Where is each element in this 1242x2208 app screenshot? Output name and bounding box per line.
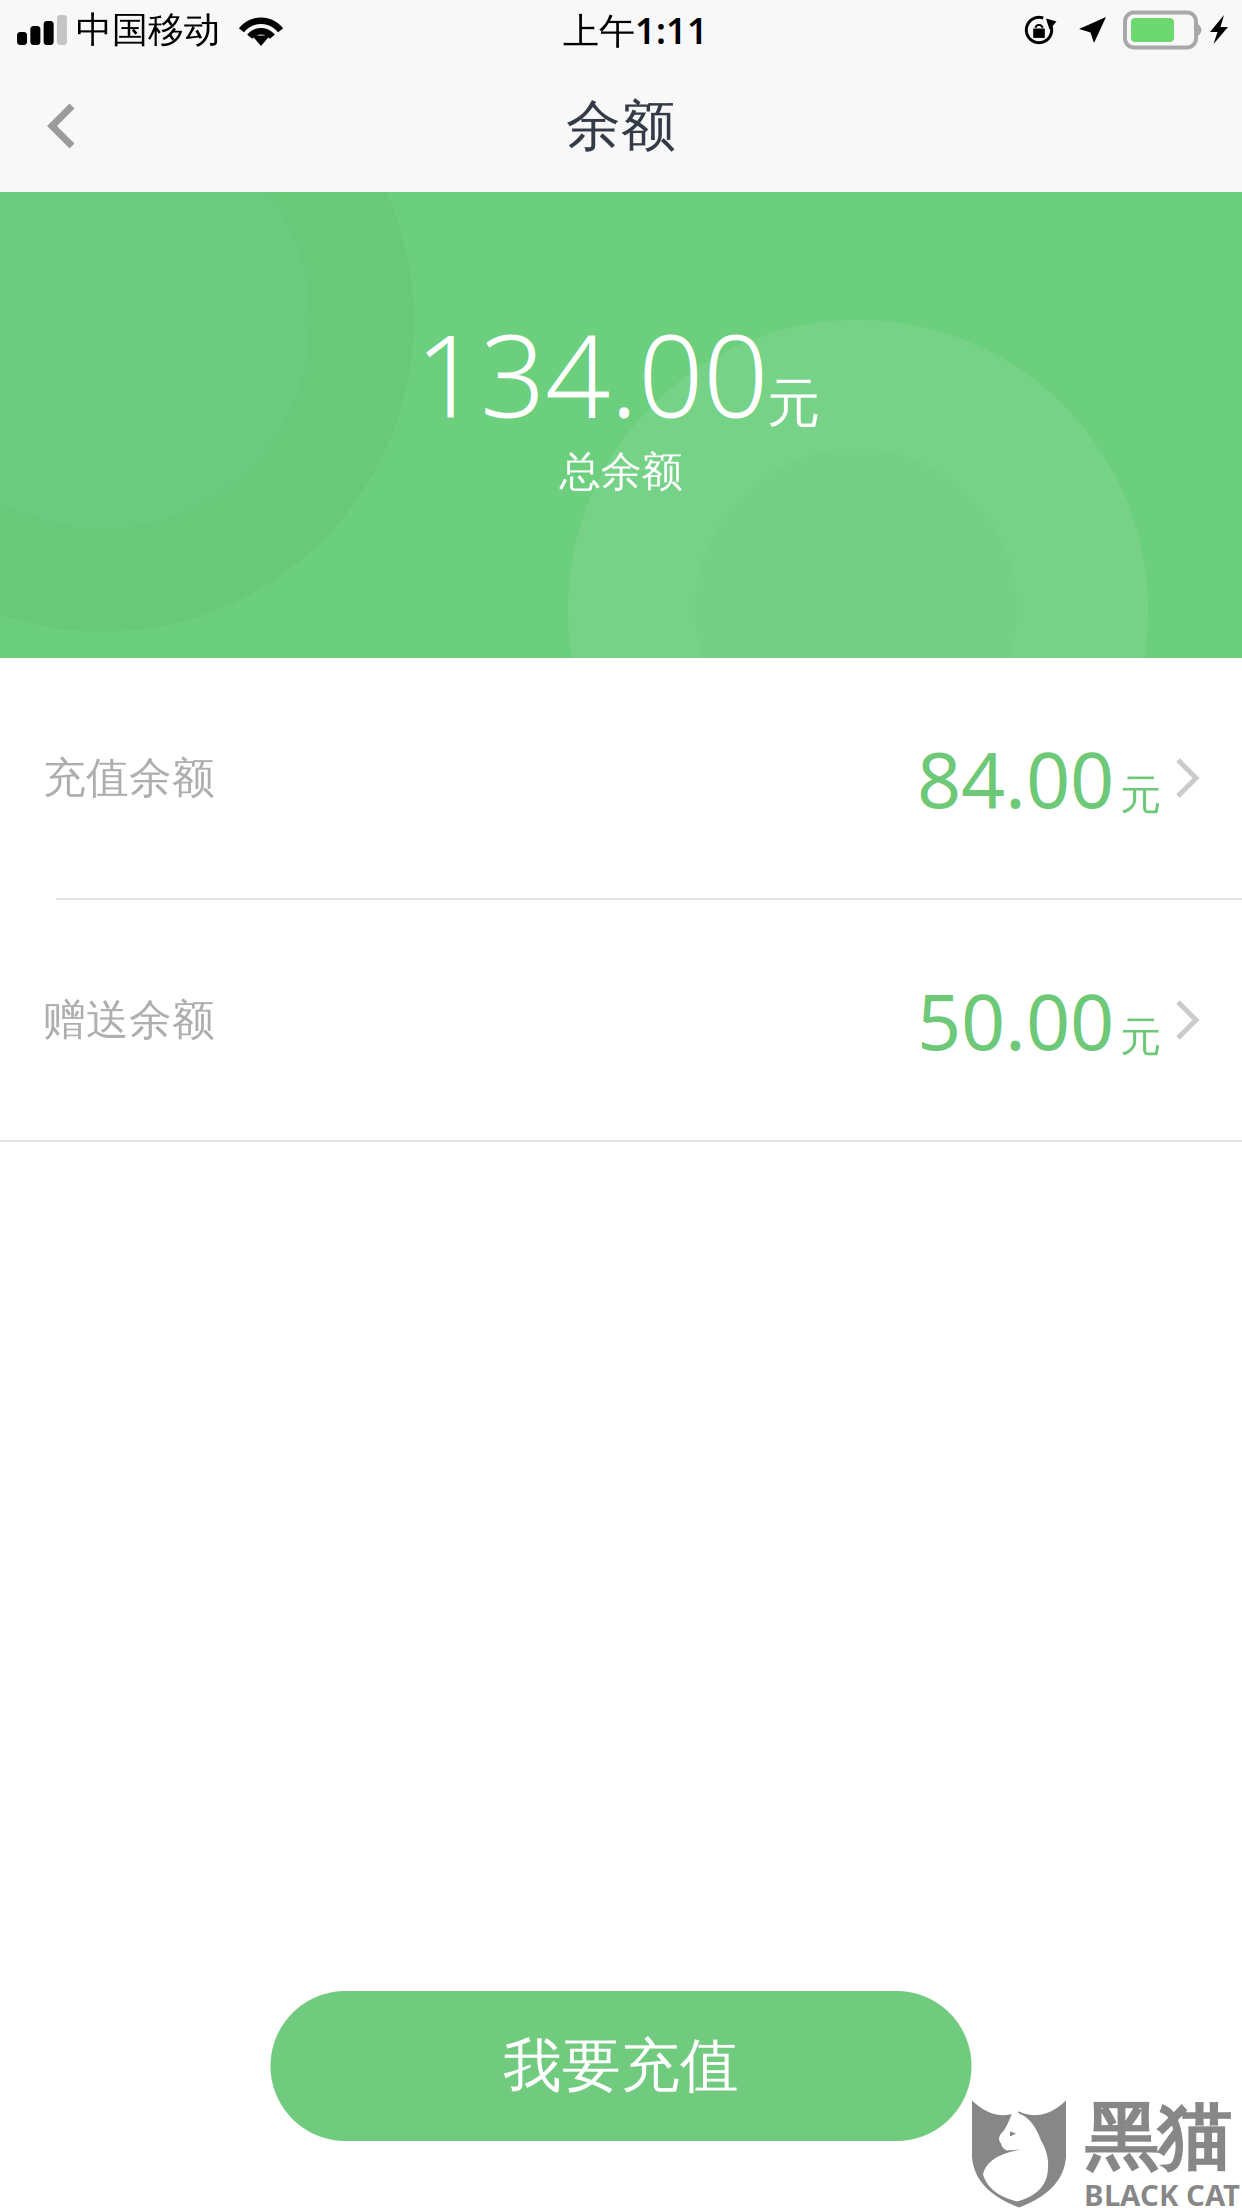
- staticText: 84.00: [917, 727, 1114, 829]
- staticText: 中国移动: [76, 8, 220, 52]
- button[interactable]: 赠送余额: [0, 900, 1242, 1140]
- button[interactable]: 我要充值: [270, 1991, 971, 2141]
- staticText: 元: [1120, 1012, 1161, 1062]
- staticText: 134.00: [415, 297, 768, 449]
- staticText: 元: [767, 371, 820, 436]
- button[interactable]: 充值余额: [0, 658, 1242, 898]
- staticText: 上午1:11: [563, 6, 708, 54]
- staticText: 我要充值: [503, 2030, 739, 2102]
- staticText: 赠送余额: [43, 994, 215, 1046]
- staticText: 充值余额: [43, 752, 215, 804]
- staticText: 总余额: [559, 446, 682, 497]
- staticText: 黑猫: [1084, 2093, 1230, 2183]
- staticText: 余额: [566, 92, 676, 159]
- staticText: 元: [1120, 770, 1161, 820]
- staticText: BLACK CAT: [1084, 2175, 1240, 2208]
- staticText: 50.00: [917, 969, 1114, 1071]
- button[interactable]: Back: [0, 60, 124, 192]
